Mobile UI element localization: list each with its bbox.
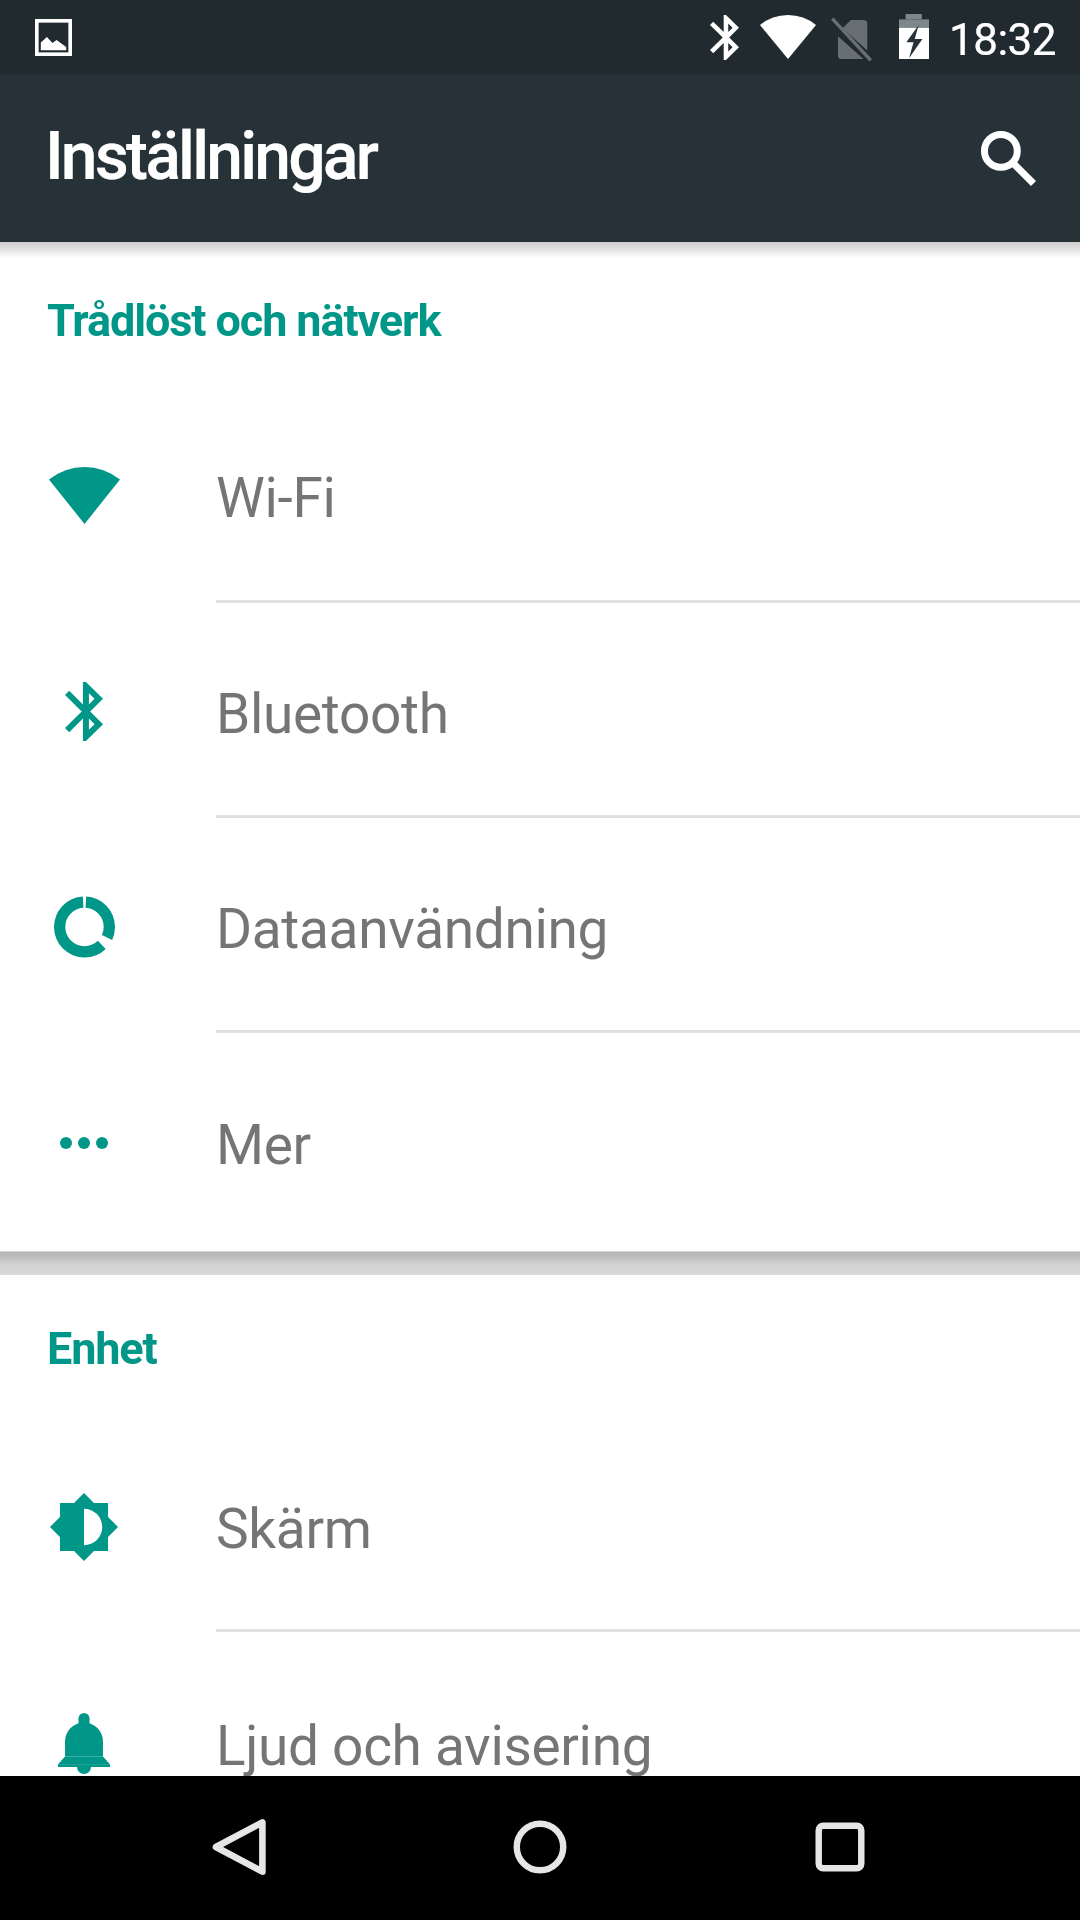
button[interactable]: Bluetooth [0,603,1080,818]
staticText: Inställningar [45,118,377,195]
button[interactable]: Wi-Fi [0,388,1080,603]
staticText: Enhet [47,1322,157,1375]
staticText: Mer [216,1113,311,1177]
staticText: Wi-Fi [216,466,336,530]
button[interactable]: Ljud och avisering [0,1632,1080,1776]
button[interactable]: Back [165,1775,315,1919]
button[interactable]: Skärm [0,1417,1080,1632]
button[interactable]: Home [465,1775,615,1919]
button[interactable]: Recents [765,1775,915,1919]
staticText: Trådlöst och nätverk [47,294,441,347]
staticText: Ljud och avisering [216,1714,653,1776]
staticText: 18:32 [949,14,1056,66]
staticText: Skärm [216,1497,372,1561]
button[interactable]: Mer [0,1033,1080,1248]
button[interactable]: Search [946,97,1068,219]
staticText: Bluetooth [216,682,449,746]
staticText: Dataanvändning [216,897,609,961]
button[interactable]: Dataanvändning [0,818,1080,1033]
